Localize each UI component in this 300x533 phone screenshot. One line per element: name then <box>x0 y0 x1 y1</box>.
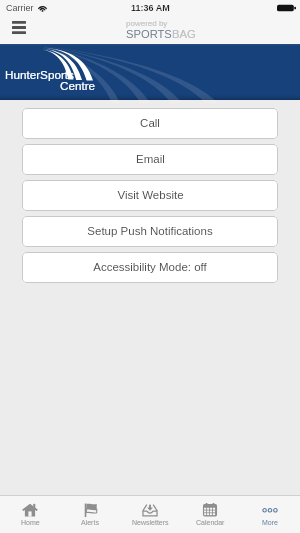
staticText: SPORTS <box>126 28 172 41</box>
staticText: Alerts <box>81 519 99 527</box>
staticText: Newsletters <box>132 519 169 527</box>
staticText: Accessibility Mode: off <box>93 261 207 274</box>
button[interactable]: Call <box>22 108 278 139</box>
button[interactable]: Alerts <box>60 496 120 533</box>
staticText: More <box>262 519 278 527</box>
staticText: Visit Website <box>117 189 184 202</box>
staticText: HunterSports <box>5 68 74 81</box>
button[interactable]: Newsletters <box>120 496 180 533</box>
staticText: Email <box>136 153 165 166</box>
staticText: BAG <box>172 28 196 41</box>
staticText: Setup Push Notifications <box>87 225 213 238</box>
staticText: Call <box>140 117 160 130</box>
staticText: powered by <box>126 19 168 28</box>
staticText: 11:36 AM <box>131 3 170 13</box>
staticText: Calendar <box>196 519 225 527</box>
button[interactable]: Visit Website <box>22 180 278 211</box>
staticText: Home <box>21 519 40 527</box>
button[interactable]: Email <box>22 144 278 175</box>
staticText: Centre <box>60 79 96 92</box>
button[interactable]: Setup Push Notifications <box>22 216 278 247</box>
button[interactable]: Calendar <box>180 496 240 533</box>
button[interactable]: Menu <box>0 20 37 44</box>
button[interactable]: Accessibility Mode: off <box>22 252 278 283</box>
button[interactable]: More <box>240 496 300 533</box>
button[interactable]: Home <box>0 496 60 533</box>
staticText: Carrier <box>6 3 34 13</box>
